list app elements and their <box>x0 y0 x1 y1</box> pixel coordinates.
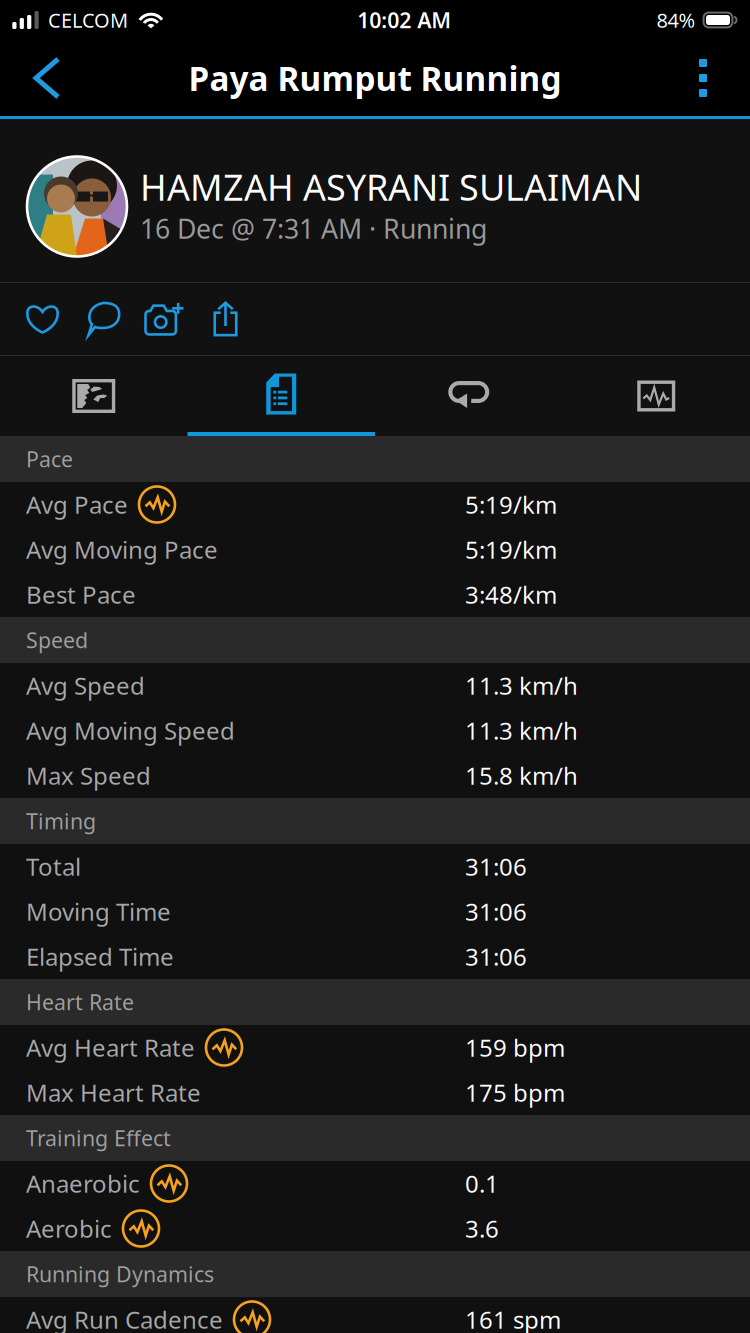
button[interactable]: Laps <box>375 356 562 436</box>
button[interactable]: Map <box>0 356 187 436</box>
button[interactable]: Best Pace <box>0 572 750 617</box>
button[interactable]: Details <box>187 356 375 436</box>
button[interactable]: Avg Speed <box>0 663 750 708</box>
button[interactable]: Max Heart Rate <box>0 1070 750 1115</box>
staticText: 5:19/km <box>465 489 557 520</box>
staticText: 16 Dec @ 7:31 AM · Running <box>140 211 487 246</box>
staticText: Best Pace <box>26 579 136 610</box>
button[interactable]: Anaerobic <box>0 1161 750 1206</box>
button[interactable]: Add photo <box>134 283 195 355</box>
staticText: 11.3 km/h <box>465 715 578 746</box>
button[interactable]: Avg Pace <box>0 482 750 527</box>
staticText: 31:06 <box>465 896 527 927</box>
button[interactable]: Charts <box>562 356 750 436</box>
staticText: 31:06 <box>465 941 527 972</box>
staticText: Pace <box>26 445 73 473</box>
staticText: CELCOM <box>48 7 128 33</box>
button[interactable]: Share <box>195 283 256 355</box>
staticText: 159 bpm <box>465 1032 565 1063</box>
button[interactable]: Avg Moving Speed <box>0 708 750 753</box>
staticText: Running Dynamics <box>26 1260 214 1288</box>
staticText: 161 spm <box>465 1304 561 1333</box>
button[interactable]: Comment <box>73 283 134 355</box>
staticText: Timing <box>26 807 96 835</box>
staticText: Anaerobic <box>26 1168 140 1199</box>
staticText: Training Effect <box>26 1124 171 1152</box>
button[interactable]: Moving Time <box>0 889 750 934</box>
staticText: Avg Moving Speed <box>26 715 235 746</box>
staticText: 3.6 <box>465 1213 499 1244</box>
staticText: Total <box>26 851 81 882</box>
staticText: 10:02 AM <box>357 6 451 34</box>
staticText: Avg Heart Rate <box>26 1032 195 1063</box>
button[interactable]: HAMZAH ASYRANI SULAIMAN <box>0 119 750 282</box>
staticText: Elapsed Time <box>26 941 174 972</box>
button[interactable]: Avg Heart Rate <box>0 1025 750 1070</box>
button[interactable]: Back <box>12 40 82 116</box>
staticText: 175 bpm <box>465 1077 565 1108</box>
staticText: 15.8 km/h <box>465 760 578 791</box>
button[interactable]: Avg Moving Pace <box>0 527 750 572</box>
button[interactable]: Aerobic <box>0 1206 750 1251</box>
staticText: Avg Run Cadence <box>26 1304 223 1333</box>
staticText: 11.3 km/h <box>465 670 578 701</box>
staticText: Aerobic <box>26 1213 112 1244</box>
button[interactable]: More options <box>668 40 738 116</box>
staticText: Speed <box>26 626 88 654</box>
staticText: 31:06 <box>465 851 527 882</box>
staticText: Avg Moving Pace <box>26 534 218 565</box>
staticText: 0.1 <box>465 1168 499 1199</box>
staticText: 3:48/km <box>465 579 557 610</box>
staticText: HAMZAH ASYRANI SULAIMAN <box>140 163 642 211</box>
staticText: Avg Pace <box>26 489 128 520</box>
button[interactable]: Avg Run Cadence <box>0 1297 750 1333</box>
button[interactable]: Elapsed Time <box>0 934 750 979</box>
staticText: Max Heart Rate <box>26 1077 201 1108</box>
button[interactable]: Total <box>0 844 750 889</box>
button[interactable]: Like <box>12 283 73 355</box>
button[interactable]: Max Speed <box>0 753 750 798</box>
staticText: Moving Time <box>26 896 171 927</box>
staticText: Paya Rumput Running <box>188 56 561 100</box>
staticText: Max Speed <box>26 760 151 791</box>
staticText: Avg Speed <box>26 670 145 701</box>
staticText: 84% <box>657 7 696 33</box>
staticText: Heart Rate <box>26 988 134 1016</box>
staticText: 5:19/km <box>465 534 557 565</box>
